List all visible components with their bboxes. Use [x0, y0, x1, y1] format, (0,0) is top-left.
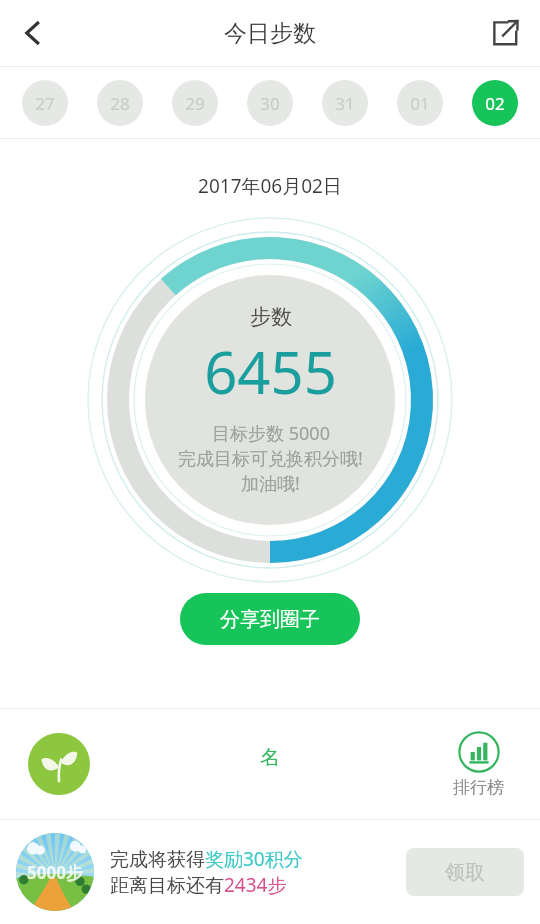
button[interactable]: 30 [247, 80, 293, 126]
staticText: 名 [260, 745, 280, 770]
button[interactable]: 31 [322, 80, 368, 126]
button[interactable]: 5000 steps badge [16, 833, 94, 911]
button[interactable]: 分享到圈子 [180, 593, 360, 645]
button[interactable]: Sprout [28, 733, 90, 795]
staticText: 领取 [445, 860, 485, 885]
button[interactable]: 排行榜 [453, 731, 504, 798]
staticText: 28 [110, 92, 130, 115]
button[interactable]: 01 [397, 80, 443, 126]
staticText: 完成将获得奖励30积分 [110, 846, 303, 872]
staticText: 完成目标可兑换积分哦! [178, 446, 363, 471]
button[interactable]: 28 [97, 80, 143, 126]
staticText: 01 [410, 92, 430, 115]
staticText: 加油哦! [241, 471, 300, 496]
button[interactable]: 27 [22, 80, 68, 126]
button[interactable]: Share [478, 6, 532, 60]
staticText: 29 [185, 92, 205, 115]
button[interactable]: 02 [472, 80, 518, 126]
staticText: 2017年06月02日 [198, 173, 342, 199]
staticText: 今日步数 [224, 19, 316, 48]
staticText: 30 [260, 92, 280, 115]
staticText: 27 [35, 92, 55, 115]
staticText: 分享到圈子 [220, 607, 320, 632]
staticText: 6455 [204, 332, 337, 411]
button[interactable]: Back [6, 6, 60, 60]
staticText: 31 [335, 92, 355, 115]
staticText: 02 [485, 92, 505, 115]
staticText: 排行榜 [453, 777, 504, 798]
staticText: 5000步 [27, 861, 83, 884]
staticText: 目标步数 5000 [212, 421, 330, 446]
button[interactable]: 29 [172, 80, 218, 126]
staticText: 步数 [250, 304, 292, 330]
staticText: 距离目标还有2434步 [110, 872, 287, 898]
button[interactable]: 领取 [406, 848, 524, 896]
